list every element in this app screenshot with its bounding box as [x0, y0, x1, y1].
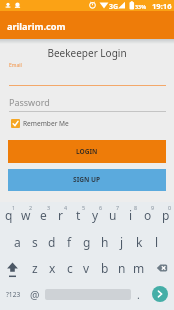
staticText: j — [120, 234, 124, 250]
button[interactable]: b — [96, 260, 113, 276]
button[interactable]: @ — [26, 287, 43, 303]
staticText: arilarim.com — [7, 20, 66, 33]
staticText: y — [92, 207, 99, 223]
button[interactable]: 7 — [109, 199, 126, 215]
button[interactable]: 8 — [127, 199, 144, 215]
button[interactable]: m — [130, 260, 147, 276]
staticText: 19:16 — [152, 1, 172, 11]
button[interactable]: i — [122, 207, 139, 223]
staticText: 3G — [109, 2, 119, 12]
button[interactable]: a — [9, 234, 26, 250]
staticText: k — [136, 234, 143, 250]
button[interactable]: Shift — [3, 258, 22, 278]
button[interactable]: Enter — [152, 286, 168, 302]
staticText: Password — [9, 96, 50, 108]
button[interactable]: t — [70, 207, 87, 223]
button[interactable]: SIGN UP — [8, 169, 166, 191]
staticText: n — [118, 260, 126, 276]
button[interactable]: 0 — [161, 199, 174, 215]
staticText: e — [40, 207, 47, 223]
staticText: Remember Me — [23, 119, 69, 128]
staticText: t — [76, 207, 81, 223]
staticText: w — [21, 207, 31, 223]
staticText: x — [49, 260, 56, 276]
button[interactable]: j — [113, 234, 130, 250]
button[interactable]: g — [78, 234, 95, 250]
staticText: u — [109, 207, 117, 223]
staticText: 5 — [82, 204, 86, 211]
staticText: z — [32, 260, 38, 276]
button[interactable]: Remember Me — [9, 117, 69, 130]
staticText: s — [32, 234, 38, 250]
staticText: o — [144, 207, 152, 223]
staticText: l — [155, 234, 159, 250]
staticText: p — [162, 207, 170, 223]
button[interactable]: ?123 — [5, 286, 22, 302]
staticText: @ — [30, 288, 40, 302]
staticText: i — [129, 207, 133, 223]
button[interactable]: c — [61, 260, 78, 276]
staticText: 3 — [47, 204, 51, 211]
button[interactable]: 6 — [92, 199, 109, 215]
staticText: 2 — [29, 204, 33, 211]
staticText: r — [58, 207, 63, 223]
staticText: 33% — [135, 3, 147, 10]
button[interactable]: o — [139, 207, 156, 223]
staticText: d — [48, 234, 56, 250]
staticText: c — [67, 260, 73, 276]
staticText: 1 — [12, 204, 16, 211]
button[interactable]: k — [131, 234, 148, 250]
staticText: f — [67, 234, 72, 250]
staticText: v — [83, 260, 90, 276]
staticText: 9 — [151, 204, 155, 211]
button[interactable]: r — [52, 207, 69, 223]
button[interactable]: 5 — [75, 199, 92, 215]
button[interactable]: 3 — [40, 199, 57, 215]
button[interactable]: u — [104, 207, 121, 223]
button[interactable]: . — [130, 287, 147, 303]
button[interactable]: w — [17, 207, 34, 223]
button[interactable]: 1 — [5, 199, 22, 215]
staticText: ?123 — [6, 290, 21, 299]
button[interactable]: z — [26, 260, 43, 276]
staticText: Email — [9, 62, 22, 69]
staticText: 4 — [64, 204, 68, 211]
button[interactable]: l — [148, 234, 165, 250]
button[interactable]: q — [0, 207, 17, 223]
button[interactable]: d — [43, 234, 60, 250]
button[interactable]: p — [157, 207, 174, 223]
button[interactable]: Backspace — [152, 258, 172, 278]
button[interactable]: v — [78, 260, 95, 276]
button[interactable]: x — [44, 260, 61, 276]
staticText: 8 — [134, 204, 138, 211]
button[interactable]: 4 — [57, 199, 74, 215]
button[interactable]: LOGIN — [8, 140, 166, 163]
staticText: b — [101, 260, 109, 276]
button[interactable]: n — [113, 260, 130, 276]
staticText: Beekeeper Login — [0, 46, 174, 60]
button[interactable]: s — [26, 234, 43, 250]
button[interactable]: 2 — [22, 199, 39, 215]
button[interactable]: e — [35, 207, 52, 223]
staticText: a — [14, 234, 21, 250]
staticText: m — [133, 260, 145, 276]
staticText: LOGIN — [76, 147, 98, 156]
button[interactable]: h — [96, 234, 113, 250]
staticText: 0 — [168, 204, 172, 211]
staticText: q — [5, 207, 13, 223]
button[interactable]: y — [87, 207, 104, 223]
staticText: h — [101, 234, 109, 250]
staticText: 7 — [116, 204, 120, 211]
staticText: SIGN UP — [73, 175, 101, 184]
staticText: . — [137, 288, 140, 302]
button[interactable]: f — [61, 234, 78, 250]
button[interactable]: 9 — [144, 199, 161, 215]
staticText: g — [83, 234, 91, 250]
staticText: 6 — [99, 204, 103, 211]
